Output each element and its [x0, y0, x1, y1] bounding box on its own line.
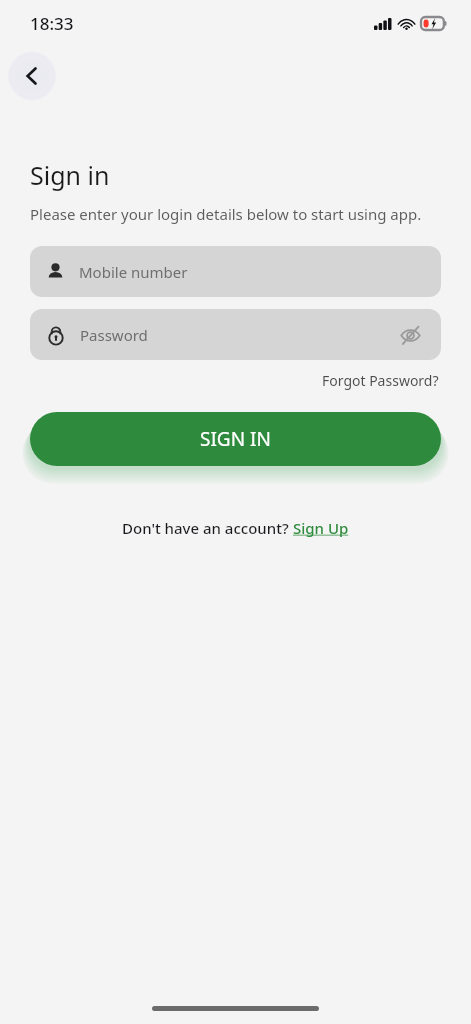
staticText: Sign in	[30, 158, 110, 192]
staticText: 18:33	[30, 12, 74, 35]
staticText: Sign Up	[293, 518, 349, 538]
button[interactable]: Mobile number	[30, 246, 441, 297]
button[interactable]: Back	[8, 52, 56, 100]
button[interactable]: SIGN IN	[30, 412, 441, 466]
staticText: Please enter your login details below to…	[30, 204, 422, 224]
staticText: Don't have an account?	[122, 518, 293, 538]
staticText: Forgot Password?	[322, 371, 439, 390]
staticText: SIGN IN	[200, 426, 271, 452]
staticText: Mobile number	[79, 262, 188, 282]
button[interactable]: Password	[30, 309, 441, 360]
button[interactable]: Forgot Password?	[320, 369, 441, 392]
button[interactable]: Sign Up	[293, 518, 349, 538]
staticText: Password	[80, 325, 148, 345]
button[interactable]: Show password	[395, 320, 425, 350]
